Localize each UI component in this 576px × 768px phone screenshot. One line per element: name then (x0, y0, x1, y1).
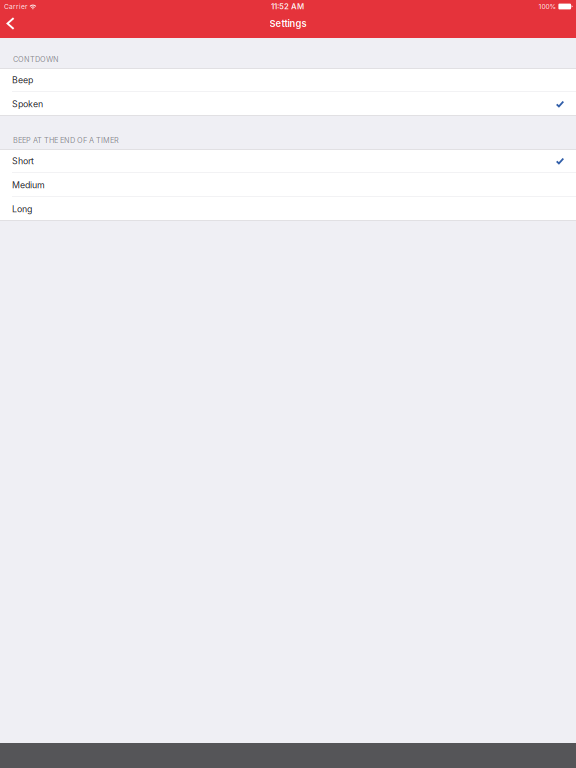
button[interactable]: Spoken (0, 92, 576, 116)
staticText: 100% (538, 2, 556, 11)
staticText: Beep (12, 75, 33, 85)
staticText: Spoken (12, 99, 43, 109)
staticText: Carrier (4, 2, 28, 11)
staticText: Settings (269, 18, 306, 29)
staticText: Medium (12, 180, 45, 190)
staticText: BEEP AT THE END OF A TIMER (13, 136, 119, 145)
staticText: Long (12, 204, 32, 214)
staticText: Short (12, 156, 34, 166)
staticText: 11:52 AM (271, 2, 304, 11)
button[interactable]: Long (0, 197, 576, 221)
button[interactable]: Back (0, 13, 23, 34)
button[interactable]: Medium (0, 173, 576, 197)
staticText: CONTDOWN (13, 55, 59, 64)
button[interactable]: Short (0, 149, 576, 173)
button[interactable]: Beep (0, 68, 576, 92)
